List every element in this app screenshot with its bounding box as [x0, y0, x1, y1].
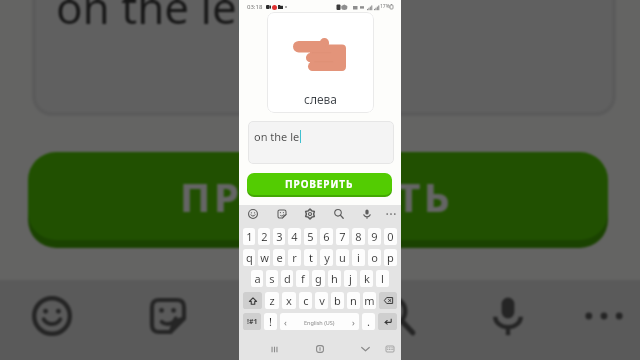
button[interactable]: n	[347, 292, 360, 309]
staticText: a	[254, 271, 261, 286]
button[interactable]: x	[282, 292, 296, 309]
staticText: b	[334, 293, 341, 308]
button[interactable]: 5	[304, 228, 317, 245]
button[interactable]: Recent apps	[265, 340, 283, 358]
staticText: r	[292, 250, 297, 265]
staticText: .	[367, 314, 370, 329]
button[interactable]: 8	[352, 228, 365, 245]
button[interactable]: g	[312, 270, 325, 287]
button[interactable]: z	[265, 292, 279, 309]
button[interactable]: l	[376, 270, 389, 287]
button[interactable]: u	[336, 249, 349, 266]
staticText: l	[381, 271, 384, 286]
button[interactable]: o	[368, 249, 381, 266]
button[interactable]: Hide keyboard	[356, 340, 374, 358]
button[interactable]: f	[296, 270, 309, 287]
button[interactable]: on the le	[32, 0, 616, 116]
staticText: !	[269, 314, 272, 329]
staticText: t	[309, 250, 313, 265]
staticText: 3	[276, 229, 283, 244]
button[interactable]: Enter	[378, 313, 397, 330]
staticText: u	[339, 250, 346, 265]
button[interactable]: Stickers	[273, 205, 291, 223]
button[interactable]: Voice input	[358, 205, 376, 223]
staticText: 17%	[380, 3, 390, 10]
button[interactable]: More options	[568, 280, 640, 352]
staticText: c	[303, 293, 309, 308]
staticText: y	[324, 250, 330, 265]
button[interactable]: y	[320, 249, 333, 266]
button[interactable]: Voice input	[472, 280, 544, 352]
button[interactable]: q	[243, 249, 255, 266]
button[interactable]: h	[328, 270, 341, 287]
button[interactable]: ‹	[280, 313, 359, 330]
button[interactable]: r	[288, 249, 301, 266]
button[interactable]: e	[273, 249, 285, 266]
staticText: 5	[307, 229, 314, 244]
button[interactable]: s	[266, 270, 278, 287]
staticText: ПРОВЕРИТЬ	[180, 168, 456, 224]
button[interactable]: .	[362, 313, 375, 330]
button[interactable]: !#1	[243, 313, 261, 330]
staticText: h	[331, 271, 338, 286]
button[interactable]: p	[384, 249, 397, 266]
button[interactable]: 7	[336, 228, 349, 245]
staticText: ›	[352, 316, 355, 328]
button[interactable]: Keyboard settings	[244, 280, 316, 352]
button[interactable]: More options	[382, 205, 400, 223]
staticText: q	[246, 250, 253, 265]
button[interactable]: 9	[368, 228, 381, 245]
staticText: x	[286, 293, 292, 308]
button[interactable]: 4	[288, 228, 301, 245]
button[interactable]: 0	[384, 228, 397, 245]
button[interactable]: Shift	[243, 292, 262, 309]
staticText: j	[349, 271, 352, 286]
staticText: ‹	[284, 316, 287, 328]
button[interactable]: 3	[273, 228, 285, 245]
staticText: 0	[387, 229, 394, 244]
staticText: !#1	[247, 317, 258, 327]
button[interactable]: Search	[360, 280, 432, 352]
button[interactable]: m	[363, 292, 376, 309]
staticText: w	[260, 250, 269, 265]
button[interactable]: Emoji	[16, 280, 88, 352]
staticText: 6	[323, 229, 330, 244]
button[interactable]: Search	[330, 205, 348, 223]
button[interactable]: Home	[311, 340, 329, 358]
button[interactable]: Keyboard settings	[301, 205, 319, 223]
staticText: f	[301, 271, 305, 286]
button[interactable]: Stickers	[132, 280, 204, 352]
button[interactable]: слева	[267, 12, 374, 113]
staticText: i	[357, 250, 360, 265]
staticText: 9	[371, 229, 378, 244]
button[interactable]: !	[264, 313, 277, 330]
button[interactable]: Emoji	[244, 205, 262, 223]
button[interactable]: Change keyboard	[382, 341, 398, 357]
button[interactable]: w	[258, 249, 270, 266]
button[interactable]: ПРОВЕРИТЬ	[28, 152, 608, 240]
button[interactable]: i	[352, 249, 365, 266]
button[interactable]: t	[304, 249, 317, 266]
button[interactable]: 2	[258, 228, 270, 245]
button[interactable]: c	[299, 292, 312, 309]
button[interactable]: Backspace	[379, 292, 397, 309]
staticText: on the le	[254, 129, 300, 144]
staticText: n	[350, 293, 357, 308]
button[interactable]: ПРОВЕРИТЬ	[247, 173, 392, 195]
button[interactable]: v	[315, 292, 328, 309]
button[interactable]: j	[344, 270, 357, 287]
button[interactable]: on the le	[248, 121, 394, 164]
button[interactable]: a	[251, 270, 263, 287]
staticText: 7	[339, 229, 346, 244]
staticText: e	[276, 250, 283, 265]
button[interactable]: b	[331, 292, 344, 309]
button[interactable]: d	[281, 270, 293, 287]
button[interactable]: 6	[320, 228, 333, 245]
staticText: слева	[304, 91, 338, 107]
staticText: v	[319, 293, 325, 308]
staticText: 2	[261, 229, 268, 244]
staticText: 1	[246, 229, 253, 244]
button[interactable]: k	[360, 270, 373, 287]
button[interactable]: 1	[243, 228, 255, 245]
staticText: m	[364, 293, 375, 308]
